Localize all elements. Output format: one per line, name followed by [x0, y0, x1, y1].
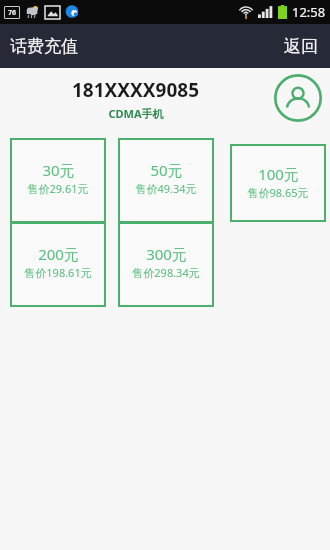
- staticText: 76: [8, 8, 17, 18]
- staticText: 181XXXX9085: [72, 77, 199, 103]
- staticText: 100元: [258, 164, 299, 184]
- button[interactable]: 100元: [230, 144, 326, 222]
- staticText: 话费充值: [10, 36, 78, 57]
- button[interactable]: 返回: [272, 28, 330, 65]
- button[interactable]: 300元: [118, 222, 214, 307]
- button[interactable]: Account: [274, 74, 322, 122]
- staticText: 售价198.61元: [24, 265, 92, 280]
- staticText: 售价49.34元: [135, 181, 197, 196]
- button[interactable]: 200元: [10, 222, 106, 307]
- staticText: 200元: [38, 244, 79, 264]
- button[interactable]: 30元: [10, 138, 106, 223]
- staticText: 50元: [150, 160, 183, 180]
- staticText: CDMA手机: [108, 106, 164, 121]
- staticText: 售价29.61元: [27, 181, 89, 196]
- staticText: 12:58: [292, 3, 326, 21]
- button[interactable]: 50元: [118, 138, 214, 223]
- staticText: 售价98.65元: [247, 185, 309, 200]
- staticText: 30元: [42, 160, 75, 180]
- staticText: 售价298.34元: [132, 265, 200, 280]
- staticText: 返回: [284, 36, 318, 57]
- staticText: 300元: [146, 244, 187, 264]
